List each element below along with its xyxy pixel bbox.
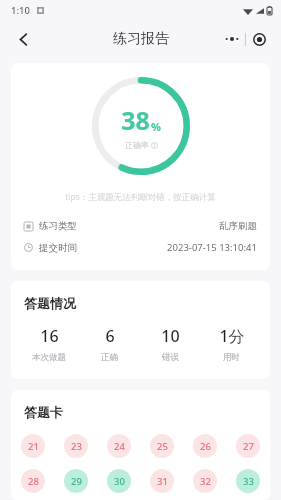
staticText: 26 <box>200 440 211 453</box>
staticText: 29 <box>71 475 82 488</box>
staticText: 24 <box>114 440 125 453</box>
button[interactable]: 27 <box>236 434 260 458</box>
staticText: 30 <box>114 475 125 488</box>
button[interactable]: 30 <box>107 469 131 493</box>
staticText: 1:10 <box>11 4 30 17</box>
staticText: 本次做题 <box>32 352 66 363</box>
staticText: 32 <box>200 475 211 488</box>
staticText: tips：主观题无法判断对错，按正确计算 <box>65 191 216 203</box>
staticText: 答题情况 <box>24 295 76 311</box>
button[interactable]: Target <box>246 26 272 52</box>
staticText: 21 <box>28 440 39 453</box>
staticText: 31 <box>157 475 168 488</box>
staticText: 练习类型 <box>39 220 77 232</box>
staticText: 1分 <box>219 325 245 347</box>
staticText: 提交时间 <box>39 242 77 254</box>
staticText: 错误 <box>162 352 179 363</box>
staticText: 正确 <box>101 352 118 363</box>
button[interactable]: More options <box>219 26 245 52</box>
staticText: 27 <box>243 440 254 453</box>
button[interactable]: 21 <box>21 434 45 458</box>
button[interactable]: 28 <box>21 469 45 493</box>
staticText: 33 <box>243 475 254 488</box>
button[interactable]: 24 <box>107 434 131 458</box>
staticText: 正确率 <box>125 140 149 150</box>
button[interactable]: 32 <box>193 469 217 493</box>
button[interactable]: 33 <box>236 469 260 493</box>
staticText: 答题卡 <box>24 404 63 420</box>
button[interactable]: 26 <box>193 434 217 458</box>
staticText: 乱序刷题 <box>219 220 257 232</box>
staticText: 练习报告 <box>113 30 169 48</box>
staticText: 10 <box>161 325 180 347</box>
staticText: 16 <box>40 325 59 347</box>
button[interactable]: 31 <box>150 469 174 493</box>
staticText: 28 <box>28 475 39 488</box>
staticText: 用时 <box>223 352 240 363</box>
staticText: 2023-07-15 13:10:41 <box>167 241 257 254</box>
button[interactable]: 23 <box>64 434 88 458</box>
button[interactable]: 29 <box>64 469 88 493</box>
button[interactable]: Back <box>6 22 40 56</box>
staticText: % <box>151 119 161 134</box>
staticText: 6 <box>105 325 115 347</box>
button[interactable]: 25 <box>150 434 174 458</box>
staticText: 25 <box>157 440 168 453</box>
staticText: 23 <box>71 440 82 453</box>
staticText: 38 <box>121 103 150 137</box>
